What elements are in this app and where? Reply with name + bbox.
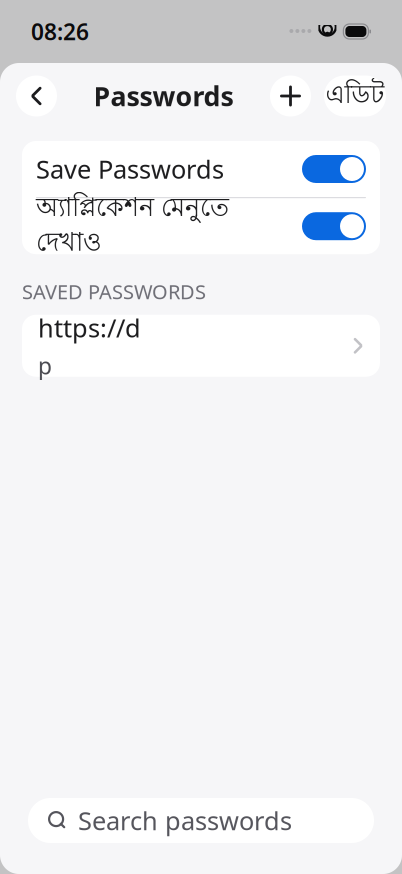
staticText: Search passwords xyxy=(78,804,292,837)
button[interactable]: Search passwords xyxy=(28,798,374,843)
staticText: Save Passwords xyxy=(36,152,224,186)
staticText: https://d xyxy=(38,311,141,344)
staticText: Passwords xyxy=(93,78,233,114)
staticText: অ্যাপ্লিকেশন মেনুতে দেখাও xyxy=(36,191,229,261)
staticText: 08:26 xyxy=(31,16,89,46)
button[interactable]: Save Passwords xyxy=(22,141,380,197)
button[interactable]: Back xyxy=(16,75,57,116)
button[interactable]: এডিট xyxy=(324,75,386,116)
button[interactable]: Add password xyxy=(270,75,311,116)
button[interactable]: https://d xyxy=(22,315,380,377)
button[interactable]: অ্যাপ্লিকেশন মেনুতে দেখাও xyxy=(22,198,380,254)
staticText: SAVED PASSWORDS xyxy=(22,278,206,305)
staticText: p xyxy=(38,350,52,381)
staticText: এডিট xyxy=(325,79,384,113)
